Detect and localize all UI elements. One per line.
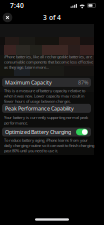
staticText: Peak Performance Capability xyxy=(5,105,74,112)
staticText: 3 of 4 xyxy=(43,13,61,22)
staticText: To reduce battery aging, iPhone learns f… xyxy=(4,137,94,153)
staticText: This is a measure of battery capacity re… xyxy=(4,88,85,104)
staticText: 7:40 xyxy=(10,1,24,10)
button[interactable]: Optimized Battery Charging xyxy=(0,127,91,136)
staticText: Your battery is currently supporting nor… xyxy=(4,115,88,125)
button[interactable]: Peak Performance Capability xyxy=(0,104,91,113)
staticText: Optimized Battery Charging xyxy=(5,128,71,136)
staticText: 87% xyxy=(78,79,88,86)
button[interactable]: Maximum Capacity xyxy=(0,78,91,87)
button[interactable]: Close xyxy=(0,11,15,24)
staticText: Maximum Capacity xyxy=(5,79,52,86)
staticText: iPhone batteries, like all rechargeable … xyxy=(4,54,93,70)
